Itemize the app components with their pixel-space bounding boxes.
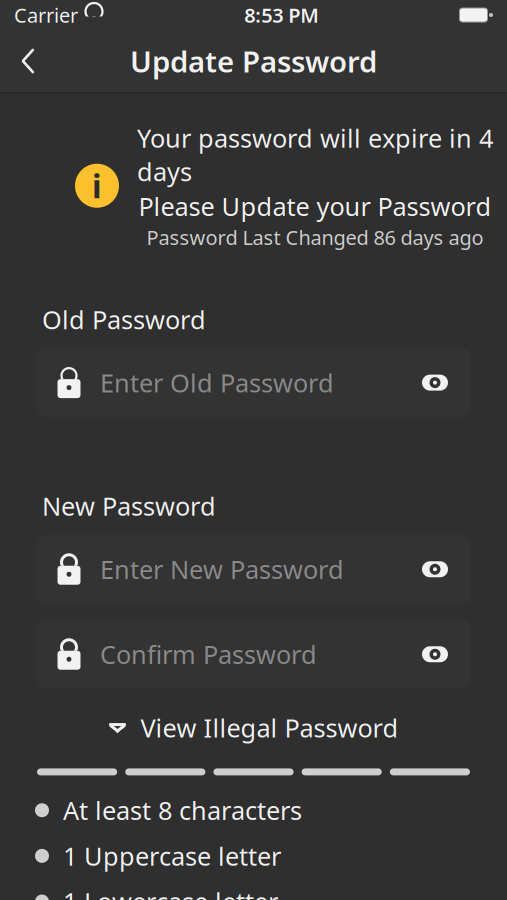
- staticText: 1 Uppercase letter: [63, 839, 281, 873]
- staticText: i: [92, 164, 102, 207]
- staticText: 1 Lowercase letter: [63, 885, 278, 900]
- staticText: Enter Old Password: [100, 366, 334, 399]
- button[interactable]: View Illegal Password: [100, 705, 406, 750]
- button[interactable]: Back: [0, 30, 56, 92]
- staticText: Your password will expire in 4 days: [137, 121, 493, 188]
- staticText: Update Password: [130, 41, 377, 80]
- button[interactable]: Enter New Password: [0, 535, 507, 604]
- staticText: Please Update your Password: [138, 189, 491, 223]
- staticText: Confirm Password: [100, 637, 317, 671]
- staticText: Enter New Password: [100, 552, 344, 586]
- staticText: Carrier: [14, 2, 78, 28]
- staticText: At least 8 characters: [63, 793, 302, 827]
- button[interactable]: Enter Old Password: [0, 348, 507, 417]
- staticText: 8:53 PM: [244, 2, 319, 28]
- button[interactable]: Confirm Password: [0, 620, 507, 689]
- staticText: Old Password: [42, 302, 206, 336]
- staticText: View Illegal Password: [140, 711, 398, 744]
- staticText: Password Last Changed 86 days ago: [146, 224, 483, 250]
- staticText: New Password: [42, 489, 216, 523]
